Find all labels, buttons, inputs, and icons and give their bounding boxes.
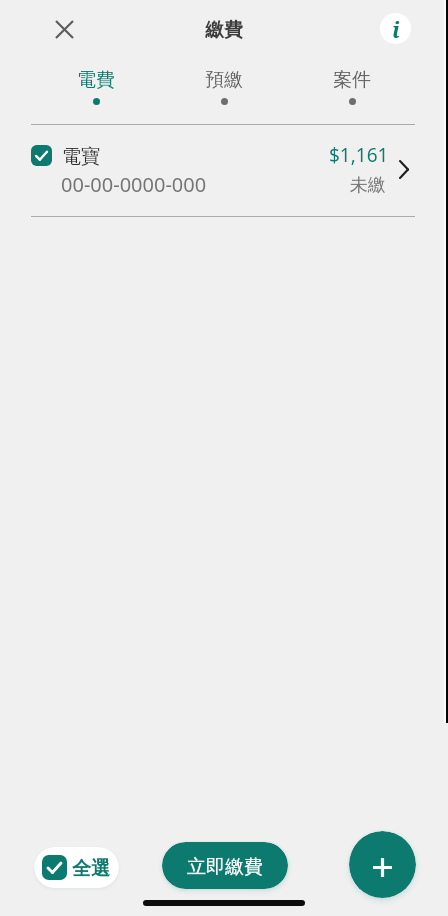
staticText: 案件	[333, 68, 371, 92]
staticText: 預繳	[205, 68, 243, 92]
staticText: 全選	[72, 857, 110, 881]
button[interactable]: 案件	[288, 57, 416, 124]
button[interactable]: Info	[380, 13, 411, 44]
button[interactable]: 電寶	[0, 125, 448, 216]
staticText: 00-00-0000-000	[61, 171, 207, 198]
staticText: i	[392, 14, 400, 44]
staticText: 電費	[77, 68, 115, 92]
staticText: 立即繳費	[187, 855, 263, 879]
staticText: 電寶	[62, 145, 100, 169]
button[interactable]: Close	[42, 6, 87, 51]
button[interactable]: 立即繳費	[162, 842, 288, 889]
button[interactable]: 電費	[32, 57, 160, 124]
staticText: $1,161	[329, 142, 389, 168]
staticText: 未繳	[350, 174, 386, 197]
button[interactable]: 全選	[34, 847, 119, 888]
button[interactable]: 預繳	[160, 57, 288, 124]
button[interactable]: Add	[349, 831, 416, 898]
staticText: 繳費	[205, 18, 243, 42]
